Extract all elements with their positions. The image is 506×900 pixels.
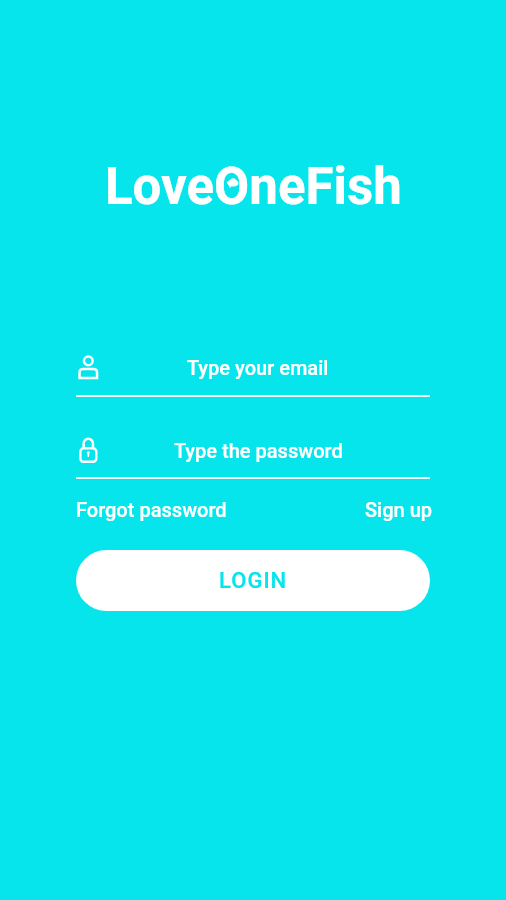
button[interactable]: LOGIN	[76, 550, 430, 611]
button[interactable]: Password	[76, 429, 430, 484]
other: Email address	[76, 355, 102, 380]
staticText: Type the password	[174, 439, 343, 462]
button[interactable]: Email address	[76, 346, 430, 402]
staticText: LoveOneFish	[105, 157, 402, 217]
button[interactable]: Forgot password	[76, 498, 227, 521]
other: Password	[76, 438, 102, 463]
button[interactable]: Sign up	[365, 498, 433, 521]
staticText: Type your email	[187, 356, 329, 379]
staticText: LOGIN	[219, 568, 288, 594]
